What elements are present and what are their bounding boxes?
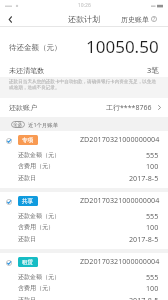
staticText: ZD20170321000000004 — [80, 195, 160, 205]
staticText: 租赁 — [22, 259, 34, 266]
staticText: 10:26 — [78, 2, 91, 9]
staticText: 555 — [146, 211, 159, 221]
staticText: 待还金额（元） — [9, 43, 62, 52]
button[interactable]: 租赁 — [0, 253, 168, 300]
staticText: 未还清笔数 — [9, 66, 44, 75]
staticText: 近1个月账单 — [28, 121, 59, 128]
staticText: 还款日 — [18, 174, 36, 182]
staticText: 还款金额（元） — [18, 212, 60, 220]
staticText: 还款日 — [18, 296, 36, 300]
staticText: 100 — [146, 161, 159, 171]
staticText: 2017-8-5 — [129, 173, 159, 183]
button[interactable]: 还款账户 — [0, 98, 168, 117]
staticText: 还款日 — [18, 235, 36, 243]
staticText: 还款金额（元） — [18, 151, 60, 159]
staticText: 555 — [146, 150, 159, 160]
button[interactable]: 专项 — [0, 131, 168, 188]
staticText: 10050.50 — [86, 35, 159, 58]
staticText: 2017-8-5 — [129, 234, 159, 244]
staticText: 还款账户 — [9, 103, 37, 112]
button[interactable]: 全选 — [11, 121, 25, 128]
button[interactable]: 历史账单 — [121, 11, 157, 27]
staticText: 还款计划 — [68, 14, 100, 24]
staticText: 专项 — [22, 137, 34, 144]
staticText: 共享 — [22, 198, 34, 205]
button[interactable]: 共享 — [0, 192, 168, 249]
staticText: 含费用（元） — [18, 162, 54, 170]
staticText: 100 — [146, 283, 159, 293]
staticText: 含费用（元） — [18, 284, 54, 292]
staticText: ZD20170321000000004 — [80, 256, 160, 266]
staticText: 还款日当天从您的还款卡中自动扣款，请确保银行卡内资金充足，以免造成逾期，造成不良… — [9, 79, 159, 91]
staticText: 3笔 — [147, 65, 159, 75]
staticText: 全选 — [13, 122, 23, 128]
button[interactable]: Back — [0, 11, 20, 27]
staticText: 还款金额（元） — [18, 273, 60, 281]
staticText: 历史账单 — [121, 15, 149, 24]
staticText: ? — [153, 16, 156, 22]
staticText: 555 — [146, 272, 159, 282]
staticText: ZD20170321000000004 — [80, 134, 160, 144]
staticText: 2017-8-5 — [129, 295, 159, 300]
staticText: 100 — [146, 222, 159, 232]
staticText: 工行****8766 — [106, 103, 152, 113]
staticText: 含费用（元） — [18, 223, 54, 231]
